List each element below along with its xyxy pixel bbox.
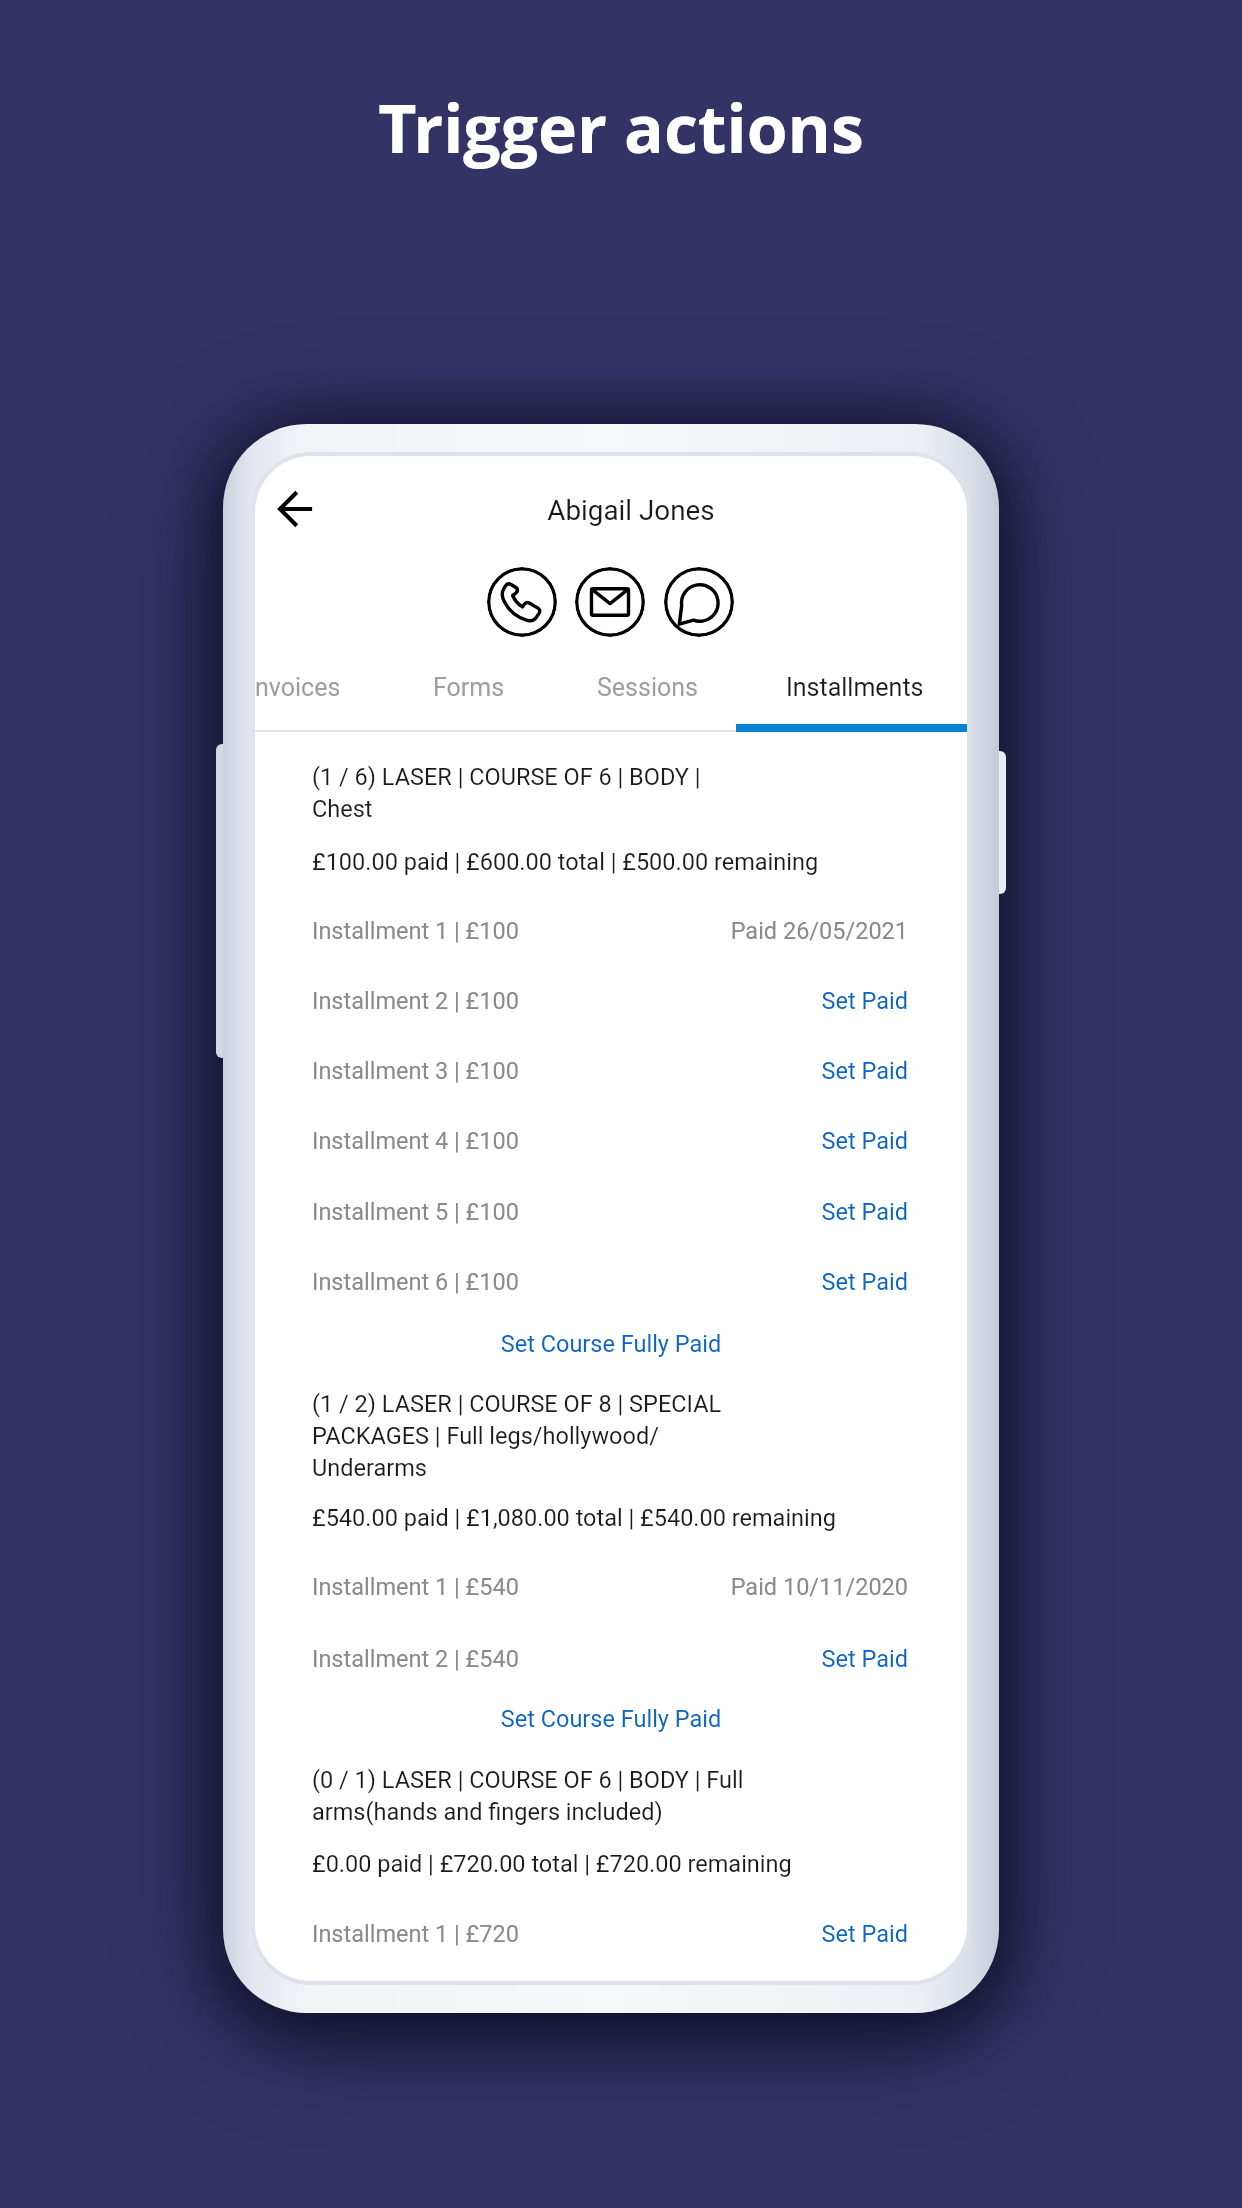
staticText: Installment 1 | £720 [312, 1920, 519, 1948]
button[interactable]: Set Paid [798, 1627, 908, 1689]
button[interactable]: Installments [741, 645, 967, 730]
staticText: Installment 3 | £100 [312, 1057, 519, 1085]
button[interactable]: Sessions [551, 645, 743, 730]
staticText: Set Course Fully Paid [255, 1330, 967, 1358]
staticText: Abigail Jones [295, 494, 967, 527]
staticText: Installment 1 | £100 [312, 917, 519, 945]
staticText: Paid 26/05/2021 [255, 917, 908, 945]
staticText: Set Paid [798, 987, 908, 1015]
staticText: Forms [433, 673, 505, 702]
staticText: Installment 6 | £100 [312, 1268, 519, 1296]
staticText: £0.00 paid | £720.00 total | £720.00 rem… [312, 1850, 792, 1878]
button[interactable]: Set Paid [798, 1180, 908, 1242]
staticText: Set Paid [798, 1198, 908, 1226]
button[interactable]: Set Paid [798, 1250, 908, 1312]
staticText: £100.00 paid | £600.00 total | £500.00 r… [312, 848, 819, 876]
staticText: Set Paid [798, 1268, 908, 1296]
staticText: £540.00 paid | £1,080.00 total | £540.00… [312, 1504, 836, 1532]
button[interactable]: Set Course Fully Paid [255, 1310, 967, 1372]
staticText: (1 / 2) LASER | COURSE OF 8 | SPECIAL PA… [312, 1390, 722, 1482]
button[interactable]: Back [258, 481, 334, 557]
staticText: Set Paid [798, 1920, 908, 1948]
button[interactable]: Set Paid [798, 1039, 908, 1101]
staticText: Set Paid [798, 1057, 908, 1085]
button[interactable]: Call [487, 567, 557, 637]
staticText: Installment 5 | £100 [312, 1198, 519, 1226]
button[interactable]: Set Paid [798, 969, 908, 1031]
staticText: Installment 2 | £540 [312, 1645, 519, 1673]
staticText: (0 / 1) LASER | COURSE OF 6 | BODY | Ful… [312, 1766, 744, 1826]
staticText: Installment 4 | £100 [312, 1127, 519, 1155]
staticText: nvoices [255, 673, 341, 702]
button[interactable]: Forms [389, 645, 548, 730]
staticText: Installment 2 | £100 [312, 987, 519, 1015]
staticText: Trigger actions [0, 82, 1242, 172]
button[interactable]: Set Paid [798, 1109, 908, 1171]
staticText: Set Paid [798, 1127, 908, 1155]
button[interactable]: nvoices [255, 645, 385, 730]
staticText: Installment 1 | £540 [312, 1573, 519, 1601]
staticText: Set Paid [798, 1645, 908, 1673]
button[interactable]: Set Paid [798, 1902, 908, 1964]
button[interactable]: Email [575, 567, 645, 637]
staticText: Paid 10/11/2020 [255, 1573, 908, 1601]
staticText: Sessions [597, 673, 698, 702]
button[interactable]: Message [664, 567, 734, 637]
staticText: (1 / 6) LASER | COURSE OF 6 | BODY | Che… [312, 763, 701, 823]
staticText: Installments [786, 673, 924, 702]
button[interactable]: Set Course Fully Paid [255, 1685, 967, 1747]
staticText: Set Course Fully Paid [255, 1705, 967, 1733]
